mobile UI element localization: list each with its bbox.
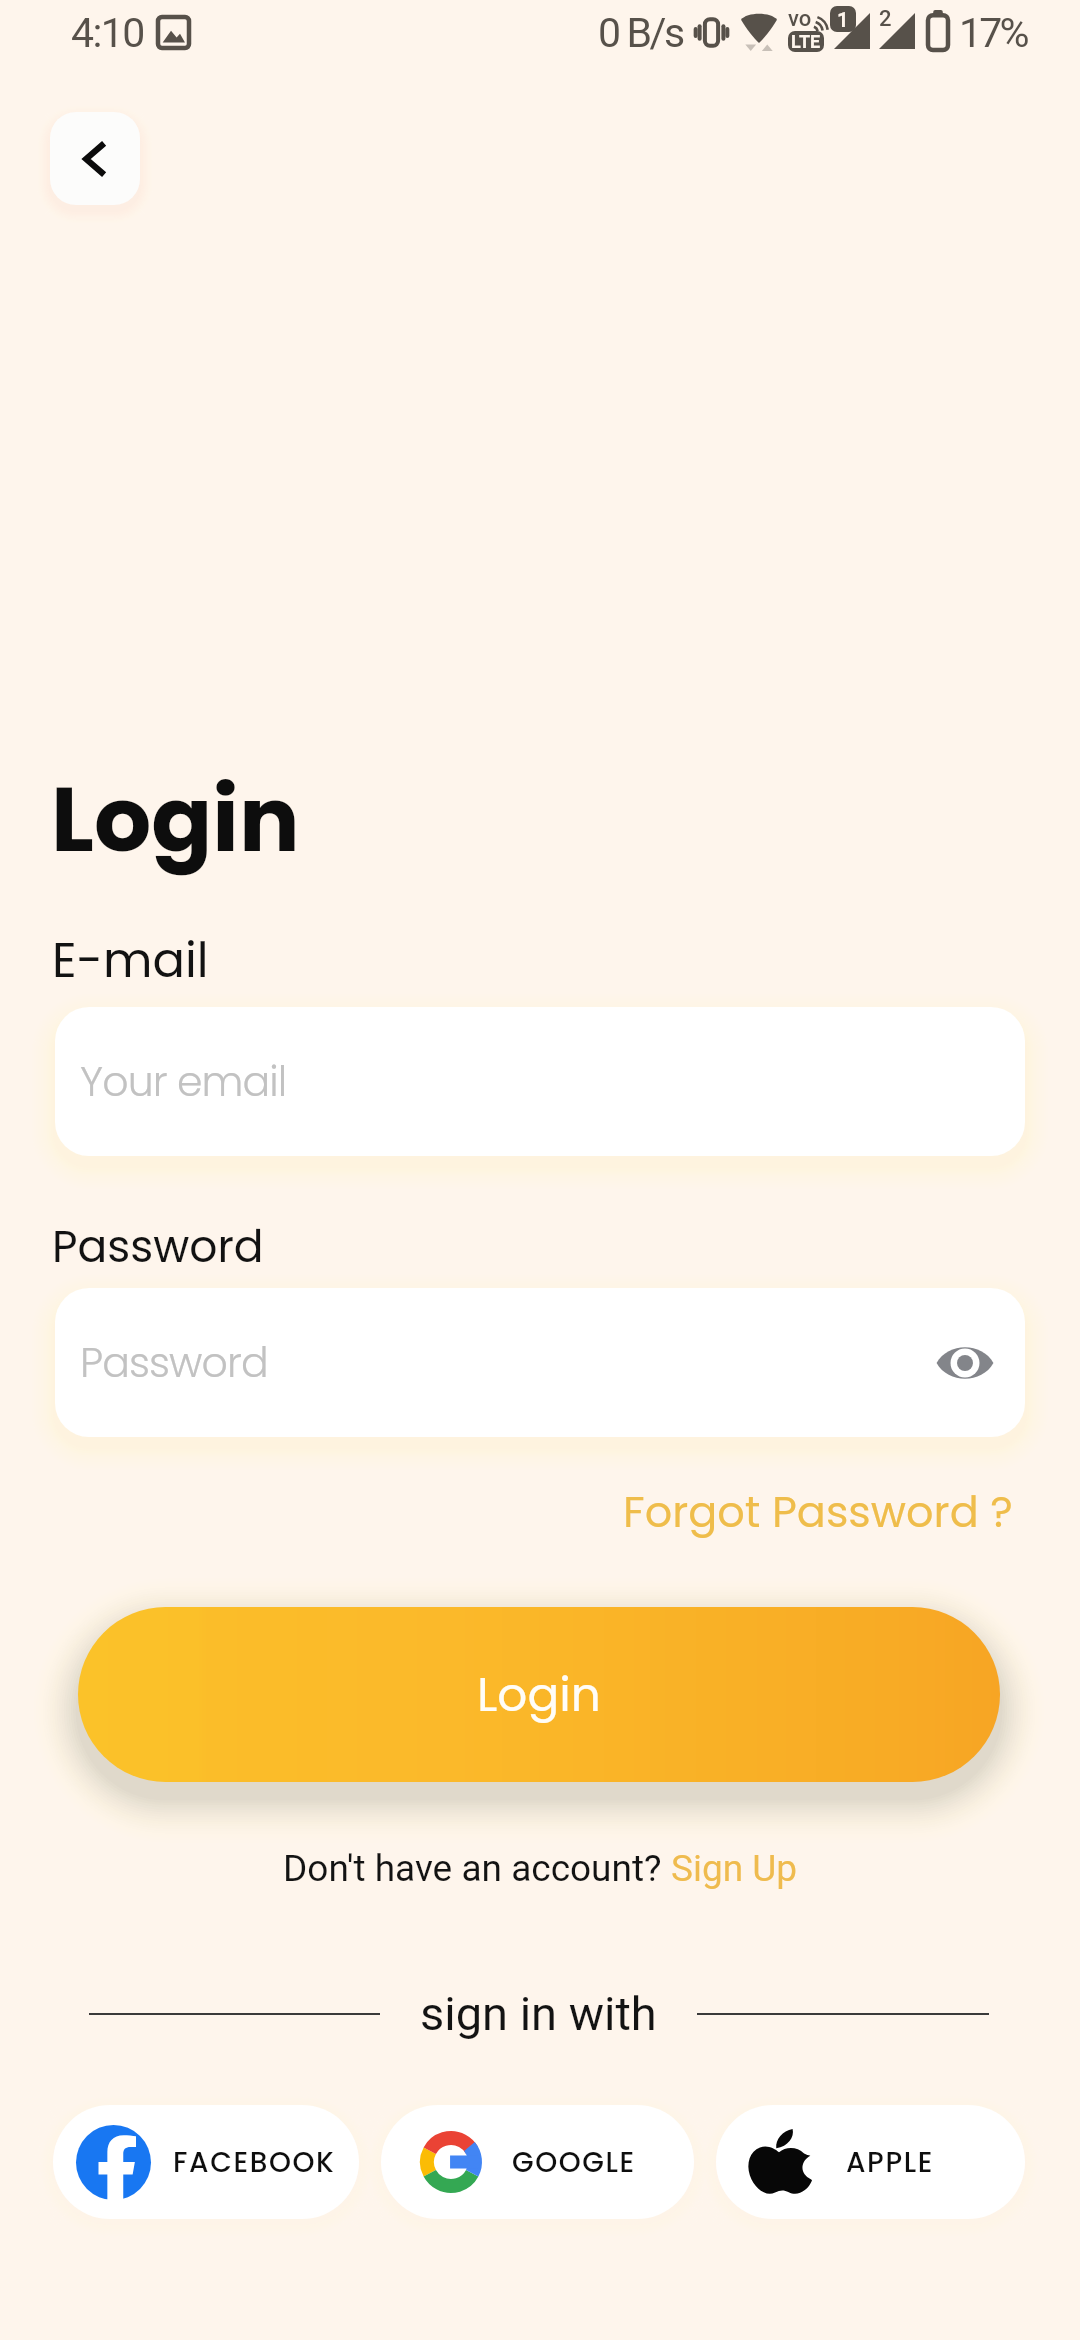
staticText: sign in with (420, 1986, 657, 2041)
staticText: E-mail (52, 927, 209, 994)
staticText: Don't have an account? (283, 1847, 671, 1890)
staticText: Password (52, 1216, 264, 1278)
staticText: Login (51, 757, 300, 883)
button[interactable]: Forgot Password ? (623, 1482, 1013, 1542)
button[interactable]: Login (78, 1607, 1000, 1782)
button[interactable]: Show password (929, 1327, 1001, 1399)
staticText: 17% (959, 9, 1027, 57)
staticText: Sign Up (671, 1847, 798, 1890)
staticText: vo (788, 6, 812, 32)
staticText: APPLE (846, 2143, 934, 2182)
button[interactable]: Back (50, 112, 140, 205)
button[interactable]: APPLE (716, 2105, 1025, 2219)
staticText: Your email (80, 1053, 287, 1110)
button[interactable]: Password (55, 1288, 1025, 1437)
button[interactable]: Sign Up (671, 1847, 798, 1890)
button[interactable]: Your email (55, 1007, 1025, 1156)
staticText: Login (477, 1662, 601, 1728)
staticText: FACEBOOK (173, 2143, 336, 2182)
button[interactable]: FACEBOOK (53, 2105, 359, 2219)
button[interactable]: GOOGLE (381, 2105, 694, 2219)
staticText: Forgot Password ? (623, 1482, 1013, 1542)
staticText: 2 (879, 6, 892, 32)
staticText: GOOGLE (512, 2143, 636, 2182)
staticText: 4:10 (71, 9, 144, 57)
staticText: 0 B/s (598, 9, 683, 57)
staticText: 1 (837, 8, 849, 31)
staticText: LTE (791, 31, 821, 52)
staticText: Password (80, 1334, 268, 1391)
